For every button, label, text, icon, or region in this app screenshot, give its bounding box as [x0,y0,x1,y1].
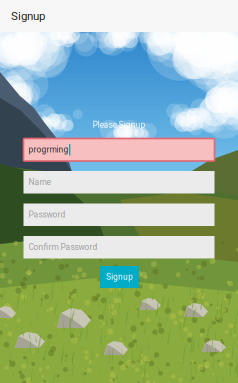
staticText: Password [28,210,65,220]
staticText: Signup [11,9,45,23]
staticText: progrming [28,145,68,155]
button[interactable]: Name [23,171,214,193]
staticText: Name [28,177,50,187]
button[interactable]: Signup [100,266,139,288]
button[interactable]: progrming [23,138,214,161]
button[interactable]: Signup [0,0,238,32]
button[interactable]: Password [23,203,214,226]
staticText: Confirm Password [28,242,97,252]
staticText: Please Signup [92,120,145,130]
button[interactable]: Confirm Password [23,236,214,258]
staticText: Signup [106,272,133,282]
